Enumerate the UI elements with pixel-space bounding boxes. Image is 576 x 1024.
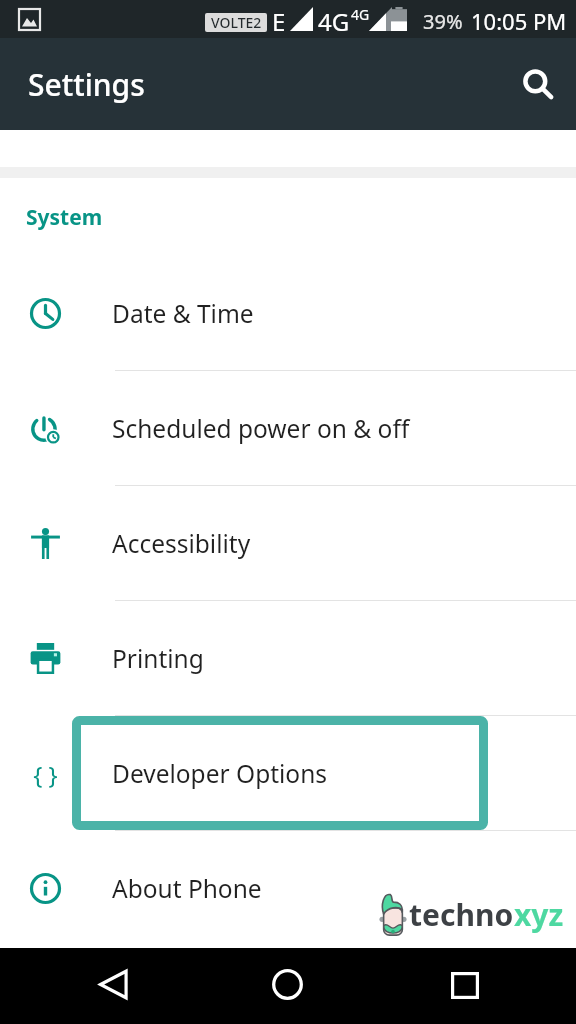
staticText: { } bbox=[33, 758, 58, 789]
button[interactable]: Accessibility bbox=[0, 486, 576, 601]
staticText: System bbox=[26, 203, 103, 232]
button[interactable]: About Phone bbox=[0, 831, 576, 946]
button[interactable]: Back bbox=[87, 958, 139, 1010]
staticText: 39% bbox=[423, 8, 463, 35]
staticText: 4G bbox=[318, 5, 350, 38]
staticText: Accessibility bbox=[112, 527, 251, 560]
staticText: Scheduled power on & off bbox=[112, 412, 410, 445]
staticText: E bbox=[272, 5, 286, 38]
button[interactable]: { } bbox=[0, 716, 576, 831]
staticText: 10:05 PM bbox=[471, 6, 567, 36]
staticText: Printing bbox=[112, 642, 204, 675]
staticText: Date & Time bbox=[112, 297, 254, 330]
button[interactable]: Search bbox=[514, 60, 562, 108]
staticText: Settings bbox=[28, 64, 145, 105]
button[interactable]: Date & Time bbox=[0, 256, 576, 371]
staticText: Developer Options bbox=[112, 757, 328, 790]
button[interactable]: Printing bbox=[0, 601, 576, 716]
button[interactable]: Scheduled power on & off bbox=[0, 371, 576, 486]
staticText: 4G bbox=[351, 5, 370, 24]
staticText: VOLTE2 bbox=[211, 13, 262, 32]
button[interactable]: Recents bbox=[439, 959, 491, 1011]
button[interactable]: Home bbox=[261, 958, 313, 1010]
staticText: About Phone bbox=[112, 872, 262, 905]
staticText: xyz bbox=[514, 894, 564, 935]
staticText: techno bbox=[409, 894, 514, 935]
